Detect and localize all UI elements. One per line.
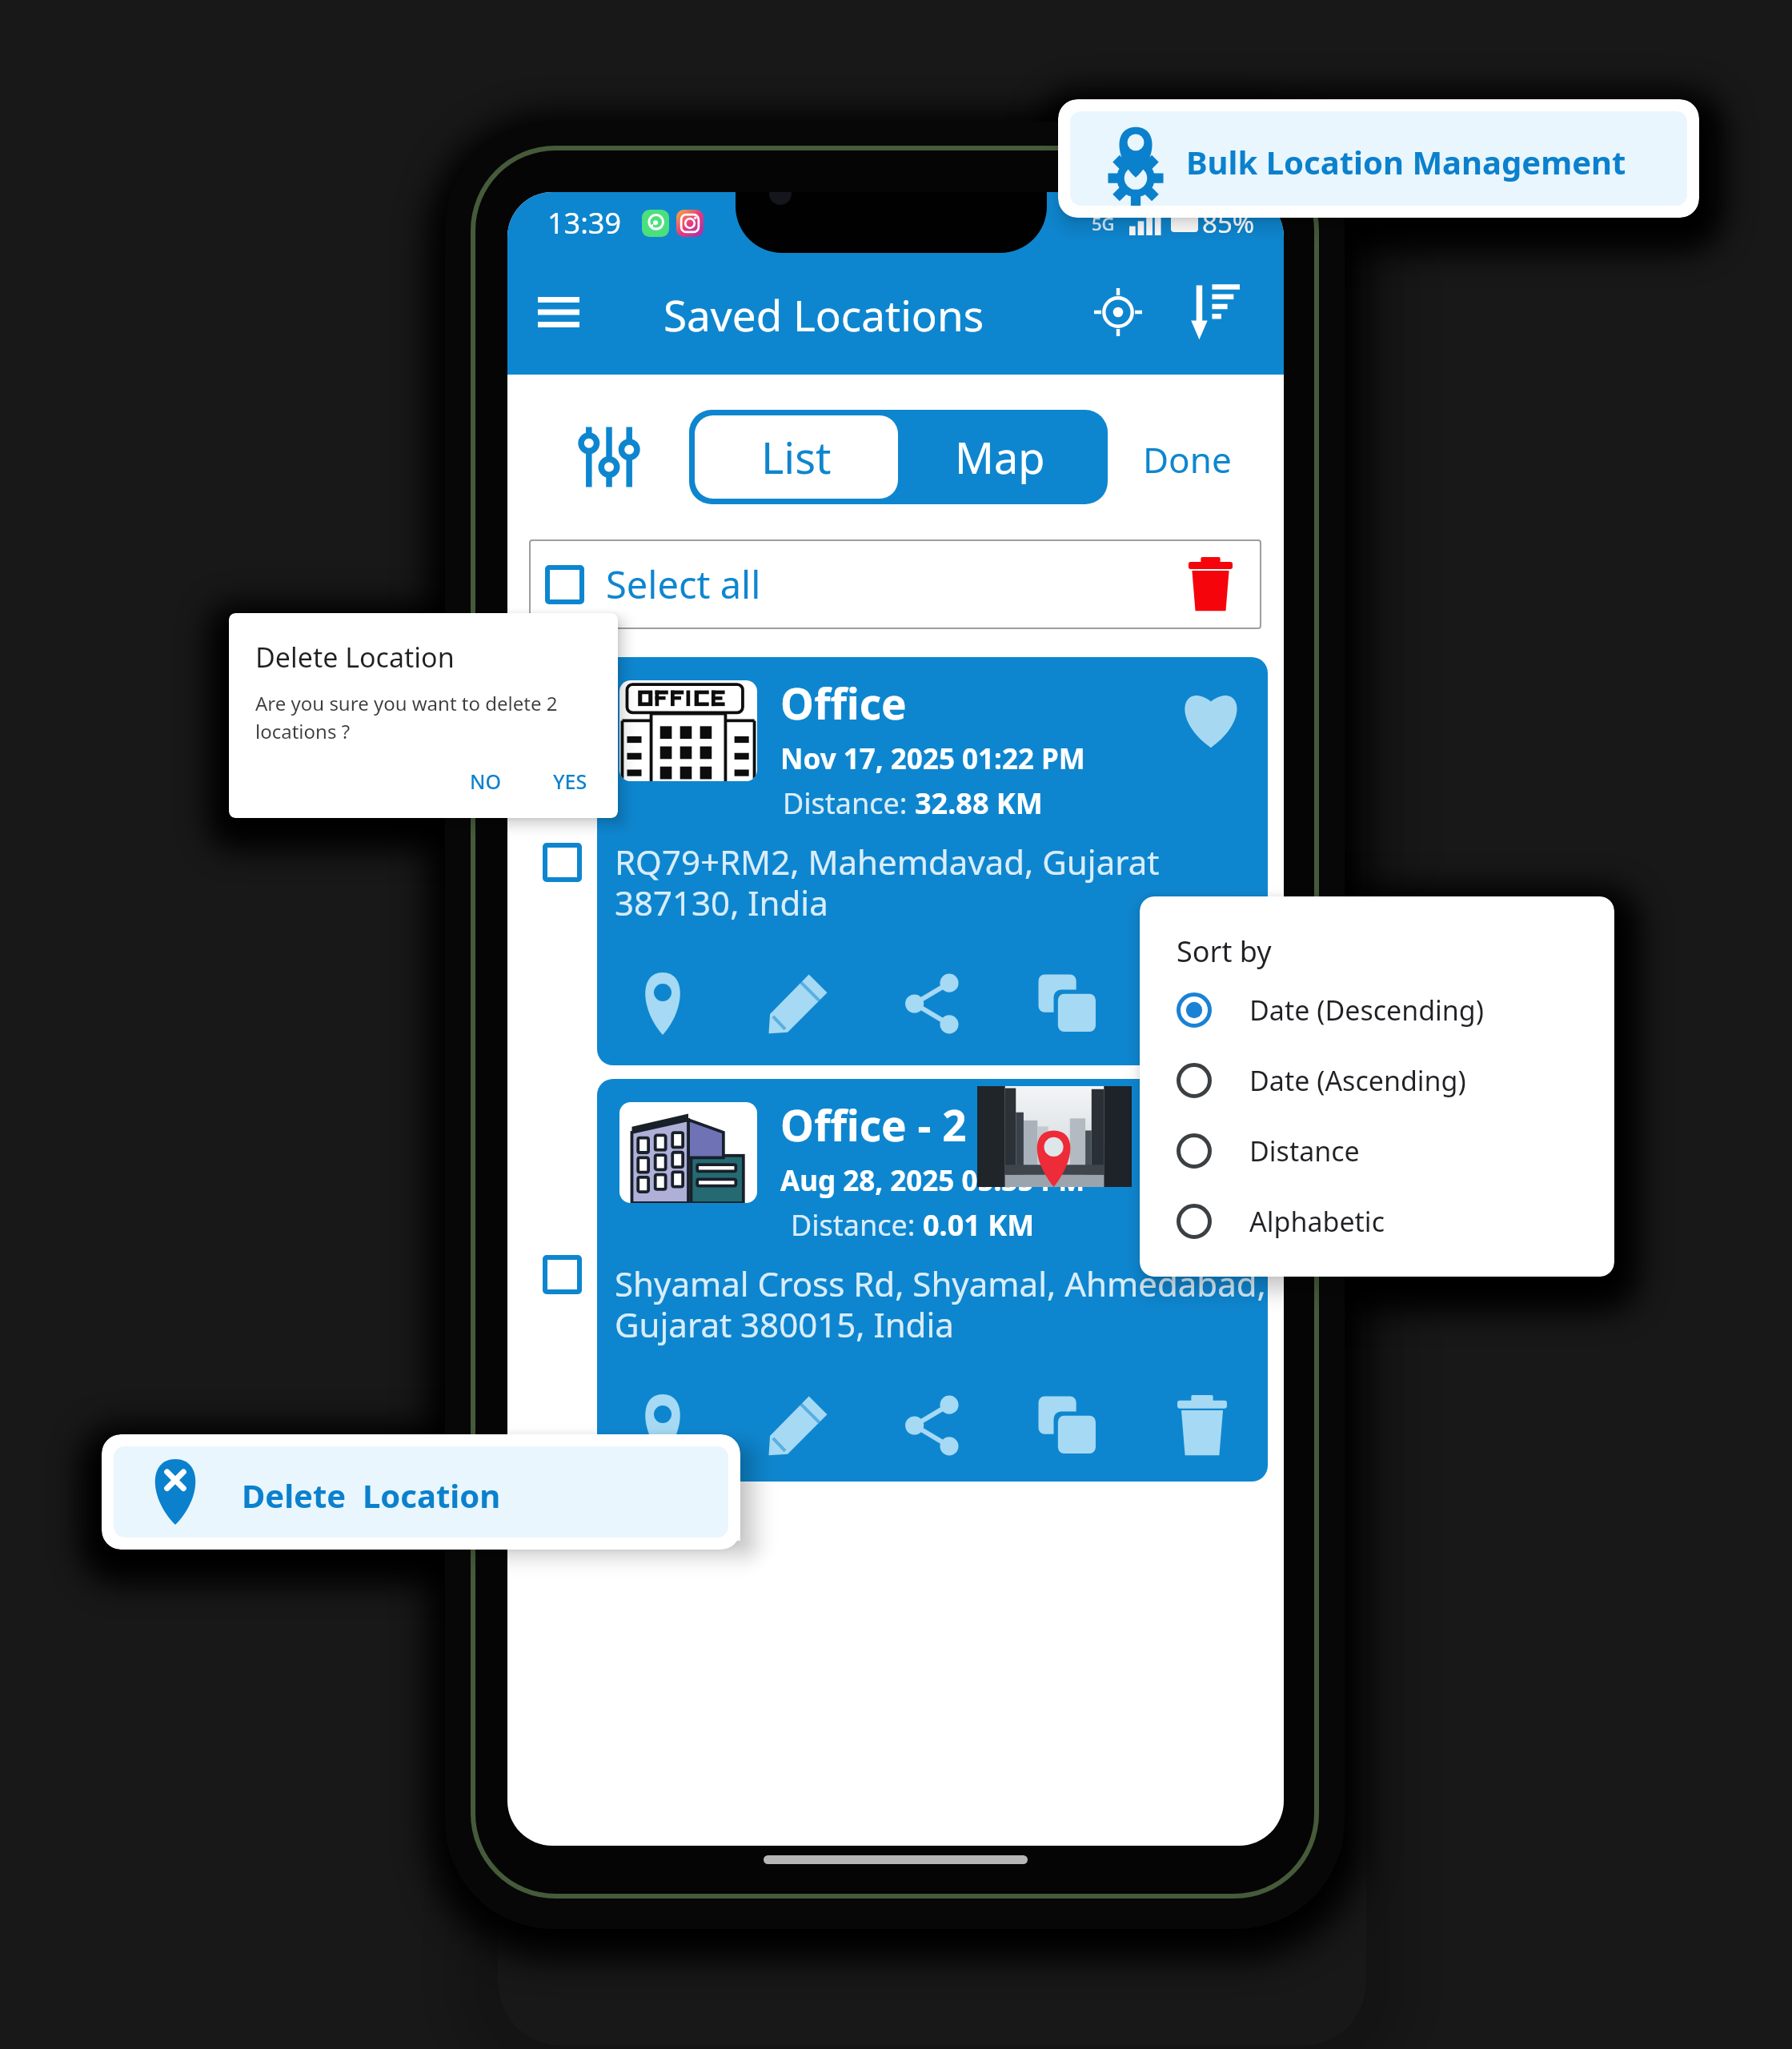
- button[interactable]: Copy: [1029, 965, 1106, 1042]
- button[interactable]: Edit: [760, 965, 836, 1042]
- button[interactable]: Done: [1135, 416, 1239, 503]
- staticText: Shyamal Cross Rd, Shyamal, Ahmedabad, Gu…: [615, 1261, 1268, 1347]
- button[interactable]: NO: [459, 761, 513, 801]
- staticText: 13:39: [547, 203, 622, 243]
- button[interactable]: Share: [894, 1387, 971, 1464]
- button[interactable]: YES: [542, 761, 599, 801]
- button[interactable]: Filter options: [576, 424, 642, 490]
- button[interactable]: Open navigation menu: [525, 279, 592, 346]
- staticText: Bulk Location Management: [1186, 140, 1626, 183]
- staticText: Distance:: [791, 1205, 923, 1245]
- button[interactable]: Map: [898, 415, 1102, 499]
- button[interactable]: Bulk Location Management: [1058, 99, 1699, 218]
- button[interactable]: Office: [597, 657, 1268, 1065]
- staticText: Done: [1143, 435, 1232, 483]
- staticText: Delete Location: [242, 1474, 501, 1517]
- button[interactable]: Show on map: [624, 965, 701, 1042]
- button[interactable]: Delete Location: [102, 1434, 740, 1550]
- staticText: Map: [955, 427, 1045, 487]
- button[interactable]: Select Office - 2: [543, 1255, 582, 1294]
- staticText: Date (Descending): [1249, 992, 1484, 1029]
- staticText: Are you sure you want to delete 2 locati…: [255, 690, 558, 744]
- button[interactable]: Favorite: [1177, 683, 1245, 752]
- button[interactable]: Share: [894, 965, 971, 1042]
- staticText: NO: [470, 768, 502, 795]
- button[interactable]: Alphabetic: [1177, 1186, 1605, 1257]
- staticText: Distance:: [783, 784, 915, 823]
- staticText: Alphabetic: [1249, 1203, 1385, 1240]
- button[interactable]: Date (Ascending): [1177, 1045, 1605, 1116]
- staticText: 0.01 KM: [923, 1205, 1035, 1245]
- button[interactable]: List: [695, 415, 898, 499]
- staticText: Aug 28, 2025 05:35 PM: [780, 1161, 1085, 1200]
- staticText: 5G: [1092, 211, 1115, 235]
- staticText: Sort by: [1177, 932, 1272, 971]
- staticText: Nov 17, 2025 01:22 PM: [780, 740, 1085, 778]
- staticText: YES: [553, 768, 587, 795]
- button[interactable]: Copy: [1029, 1387, 1106, 1464]
- button[interactable]: Delete: [1164, 1387, 1241, 1464]
- staticText: Office: [780, 674, 907, 732]
- button[interactable]: Delete selected locations: [1178, 548, 1242, 620]
- button[interactable]: Select Office: [543, 843, 582, 882]
- button[interactable]: Select all: [529, 539, 1261, 629]
- staticText: 85%: [1202, 205, 1255, 241]
- button[interactable]: Date (Descending): [1177, 975, 1605, 1045]
- button[interactable]: Show on map: [624, 1387, 701, 1464]
- staticText: List: [761, 427, 832, 487]
- staticText: Select all: [606, 559, 761, 610]
- staticText: Delete Location: [255, 639, 455, 676]
- button[interactable]: Distance: [1177, 1116, 1605, 1186]
- staticText: Date (Ascending): [1249, 1062, 1466, 1099]
- staticText: Saved Locations: [663, 286, 984, 343]
- staticText: Distance: [1249, 1133, 1360, 1169]
- staticText: Office - 2: [780, 1096, 967, 1153]
- button[interactable]: Edit: [760, 1387, 836, 1464]
- button[interactable]: Sort: [1179, 277, 1249, 347]
- button[interactable]: My location: [1084, 279, 1152, 346]
- staticText: RQ79+RM2, Mahemdavad, Gujarat 387130, In…: [615, 839, 1268, 925]
- staticText: 32.88 KM: [915, 784, 1043, 823]
- button[interactable]: Office - 2: [597, 1079, 1268, 1482]
